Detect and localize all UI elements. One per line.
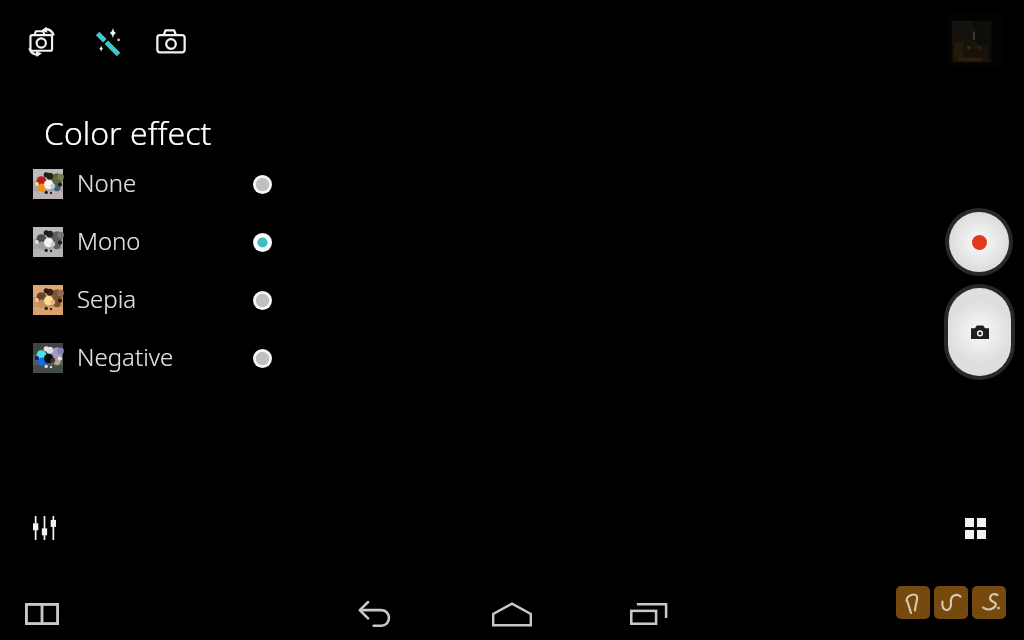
button[interactable]: Grid mode xyxy=(955,508,995,548)
button[interactable]: Switch camera xyxy=(19,18,65,64)
button[interactable]: Auto enhance xyxy=(86,19,132,65)
staticText: None xyxy=(77,166,137,199)
button[interactable]: Mono xyxy=(0,213,300,271)
button[interactable]: Record video xyxy=(945,208,1013,276)
button[interactable]: Settings xyxy=(24,508,64,548)
button[interactable]: Home xyxy=(486,592,538,636)
button[interactable]: Take photo xyxy=(944,284,1015,380)
button[interactable]: Keyboard key 3 xyxy=(972,586,1006,619)
staticText: Negative xyxy=(77,340,174,373)
button[interactable]: Back xyxy=(349,592,401,636)
button[interactable]: Last photo xyxy=(946,13,1003,69)
button[interactable]: Split screen xyxy=(16,592,68,636)
button[interactable]: None xyxy=(0,155,300,213)
staticText: Mono xyxy=(77,224,141,257)
button[interactable]: Sepia xyxy=(0,271,300,329)
button[interactable]: Keyboard key 1 xyxy=(896,586,930,619)
button[interactable]: Negative xyxy=(0,329,300,387)
button[interactable]: Camera mode xyxy=(148,18,194,64)
button[interactable]: Recents xyxy=(623,592,675,636)
staticText: Color effect xyxy=(44,111,212,155)
staticText: Sepia xyxy=(77,282,137,315)
button[interactable]: Keyboard key 2 xyxy=(934,586,968,619)
